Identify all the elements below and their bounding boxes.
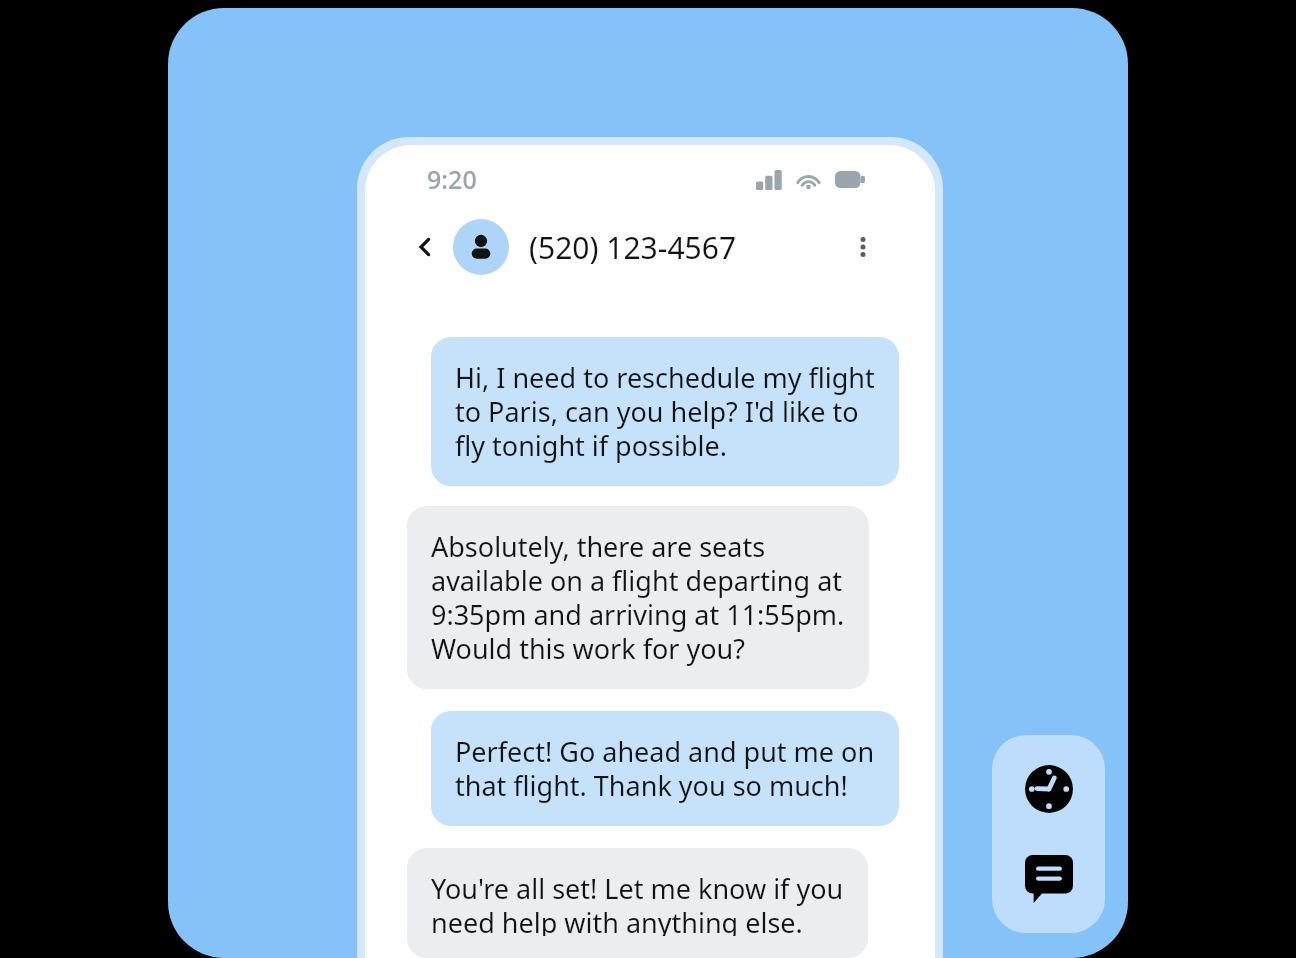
staticText: Hi, I need to reschedule my flight to Pa… <box>455 359 875 464</box>
button[interactable]: More options <box>843 227 883 267</box>
staticText: Perfect! Go ahead and put me on that fli… <box>455 733 875 804</box>
button[interactable]: Back <box>407 229 443 265</box>
button[interactable]: Messages <box>1020 850 1078 908</box>
button[interactable]: (520) 123-4567 <box>453 219 843 275</box>
staticText: (520) 123-4567 <box>529 227 737 268</box>
button[interactable]: Absolutely, there are seats available on… <box>407 506 869 689</box>
button[interactable]: Hi, I need to reschedule my flight to Pa… <box>431 337 899 486</box>
button[interactable]: Clock <box>1020 760 1078 818</box>
button[interactable]: Perfect! Go ahead and put me on that fli… <box>431 711 899 826</box>
staticText: You're all set! Let me know if you need … <box>431 870 844 936</box>
button[interactable]: You're all set! Let me know if you need … <box>407 848 868 958</box>
staticText: Absolutely, there are seats available on… <box>431 528 845 667</box>
staticText: 9:20 <box>427 162 477 196</box>
